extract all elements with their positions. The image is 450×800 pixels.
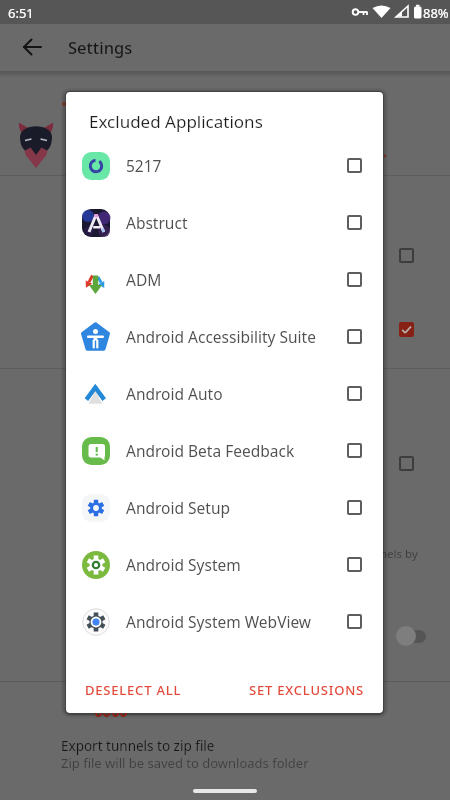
button[interactable] — [347, 557, 362, 572]
button[interactable] — [347, 215, 362, 230]
staticText: Abstruct — [126, 212, 347, 233]
staticText: Android System — [126, 554, 347, 575]
staticText: Android Auto — [126, 383, 347, 404]
staticText: 88% — [423, 4, 449, 22]
button[interactable] — [347, 500, 362, 515]
staticText: Excluded Applications — [89, 110, 263, 133]
button[interactable]: Android Setup — [66, 479, 383, 536]
staticText: Android Accessibility Suite — [126, 326, 347, 347]
button[interactable]: Android System WebView — [66, 593, 383, 650]
staticText: Settings — [68, 36, 133, 58]
button[interactable] — [347, 158, 362, 173]
staticText: ADM — [126, 269, 347, 290]
staticText: Android System WebView — [126, 611, 347, 632]
button[interactable]: 5217 — [66, 137, 383, 194]
button[interactable] — [347, 443, 362, 458]
staticText: Export tunnels to zip file — [61, 737, 215, 755]
button[interactable]: Abstruct — [66, 194, 383, 251]
button[interactable] — [347, 614, 362, 629]
staticText: 5217 — [126, 155, 347, 176]
button[interactable]: ADM — [66, 251, 383, 308]
staticText: 6:51 — [8, 4, 34, 22]
button[interactable] — [347, 272, 362, 287]
staticText: Zip file will be saved to downloads fold… — [61, 754, 309, 772]
staticText: Android Setup — [126, 497, 347, 518]
button[interactable]: Android Auto — [66, 365, 383, 422]
button[interactable] — [347, 329, 362, 344]
staticText: Android Beta Feedback — [126, 440, 347, 461]
staticText: SET EXCLUSIONS — [249, 681, 365, 699]
button[interactable] — [347, 386, 362, 401]
button[interactable]: DESELECT ALL — [77, 673, 190, 707]
button[interactable] — [0, 24, 56, 71]
button[interactable]: Android Accessibility Suite — [66, 308, 383, 365]
button[interactable]: Android System — [66, 536, 383, 593]
button[interactable]: SET EXCLUSIONS — [241, 673, 373, 707]
button[interactable]: Android Beta Feedback — [66, 422, 383, 479]
staticText: nels by — [380, 546, 418, 562]
staticText: DESELECT ALL — [85, 681, 182, 699]
